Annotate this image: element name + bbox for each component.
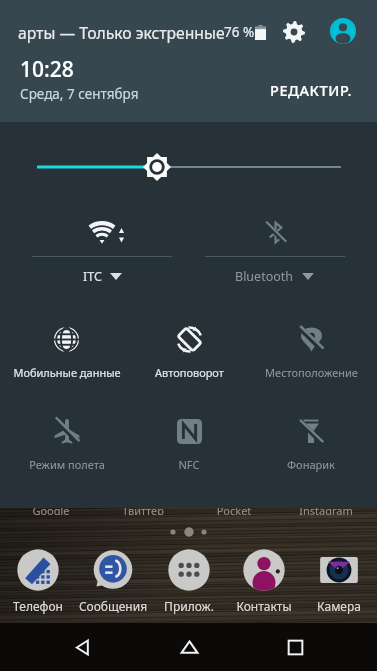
staticText: Google: [11, 503, 91, 515]
button[interactable]: ITC: [16, 208, 188, 285]
staticText: ITC: [83, 268, 102, 285]
staticText: Телефон: [1, 598, 75, 614]
staticText: Камера: [302, 598, 376, 614]
button[interactable]: Фонарик: [250, 414, 372, 472]
button[interactable]: Сообщения: [76, 546, 150, 614]
button[interactable]: РЕДАКТИР.: [266, 77, 357, 103]
staticText: Местоположение: [265, 365, 358, 380]
staticText: Прилож.: [152, 598, 226, 614]
staticText: Bluetooth: [235, 268, 294, 285]
button[interactable]: Brightness: [0, 150, 377, 184]
button[interactable]: Прилож.: [152, 546, 226, 614]
staticText: Фонарик: [287, 457, 335, 472]
button[interactable]: Home: [165, 623, 213, 671]
staticText: Сообщения: [76, 598, 150, 614]
button[interactable]: Мобильные данные: [5, 322, 128, 380]
button[interactable]: Recent apps: [271, 623, 319, 671]
button[interactable]: NFC: [128, 414, 250, 472]
button[interactable]: Камера: [302, 546, 376, 614]
staticText: Твиттер: [103, 503, 183, 515]
button[interactable]: Bluetooth: [188, 208, 361, 285]
button[interactable]: Местоположение: [250, 322, 372, 380]
staticText: Контакты: [227, 598, 301, 614]
button[interactable]: Settings: [275, 13, 312, 50]
staticText: Автоповорот: [155, 365, 224, 380]
button[interactable]: Телефон: [1, 546, 75, 614]
button[interactable]: Back: [58, 623, 106, 671]
staticText: 10:28: [20, 55, 74, 84]
button[interactable]: Режим полета: [5, 414, 128, 472]
button[interactable]: Автоповорот: [128, 322, 250, 380]
staticText: 76 %: [224, 23, 255, 41]
staticText: арты — Только экстренные: [18, 22, 224, 43]
staticText: РЕДАКТИР.: [270, 80, 353, 100]
staticText: Instagram: [286, 503, 366, 515]
staticText: Мобильные данные: [13, 365, 121, 380]
staticText: Режим полета: [29, 457, 105, 472]
button[interactable]: Контакты: [227, 546, 301, 614]
button[interactable]: User account: [325, 13, 361, 49]
staticText: Среда, 7 сентября: [20, 85, 139, 103]
staticText: NFC: [178, 457, 200, 472]
staticText: Pocket: [194, 503, 274, 515]
